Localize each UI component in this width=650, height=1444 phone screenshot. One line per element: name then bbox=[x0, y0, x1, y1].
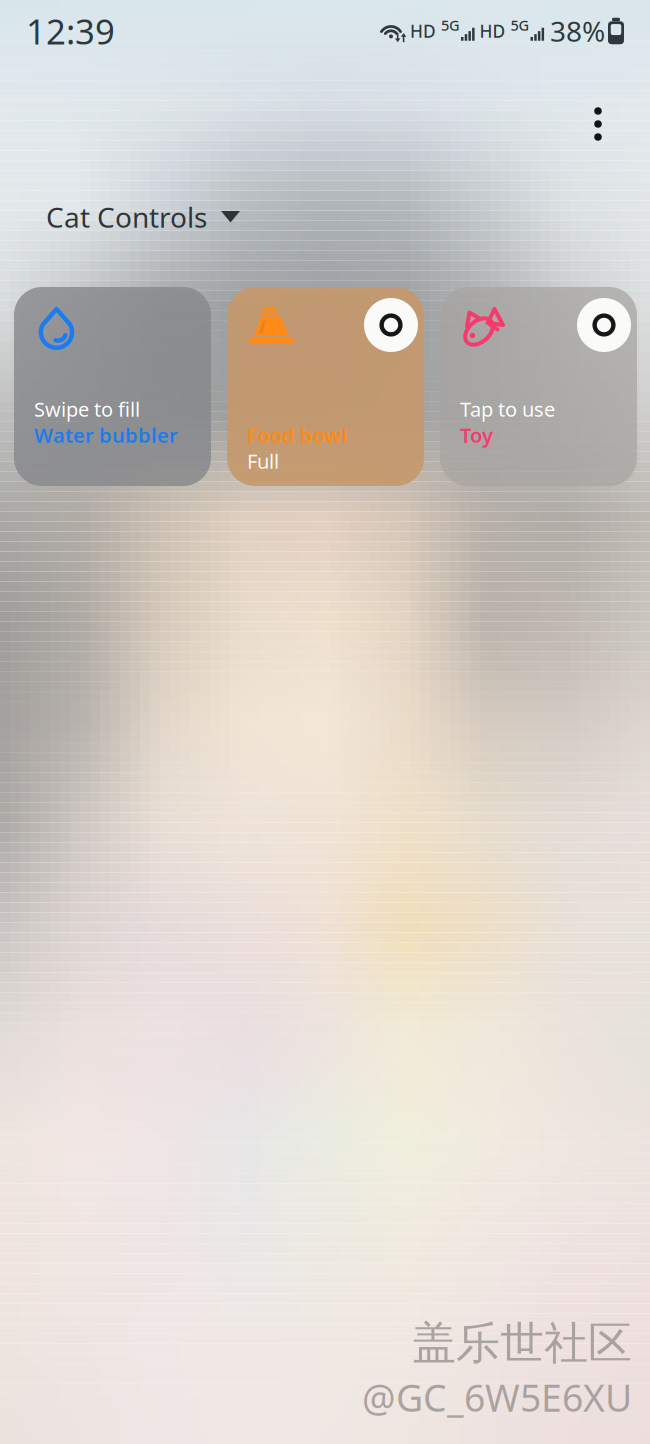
staticText: Cat Controls bbox=[46, 198, 207, 236]
staticText: Swipe to fill bbox=[34, 396, 140, 422]
staticText: Food bowl bbox=[247, 422, 348, 448]
staticText: 38% bbox=[550, 12, 605, 50]
staticText: 盖乐世社区 bbox=[412, 1316, 632, 1370]
button[interactable]: Cat Controls bbox=[0, 190, 254, 244]
staticText: Tap to use bbox=[460, 396, 555, 422]
staticText: Water bubbler bbox=[34, 422, 178, 448]
button[interactable]: More options bbox=[575, 98, 621, 150]
staticText: 12:39 bbox=[26, 8, 115, 54]
staticText: HD bbox=[410, 19, 436, 42]
staticText: Toy bbox=[460, 422, 493, 448]
staticText: @GC_6W5E6XU bbox=[362, 1372, 632, 1422]
button[interactable]: Toy, tap to use bbox=[440, 287, 637, 486]
button[interactable]: Food bowl, full bbox=[227, 287, 424, 486]
staticText: 5G bbox=[441, 15, 460, 35]
staticText: HD bbox=[479, 19, 505, 42]
staticText: 5G bbox=[510, 15, 529, 35]
button[interactable]: Water bubbler, swipe to fill bbox=[14, 287, 211, 486]
staticText: Full bbox=[247, 448, 279, 474]
